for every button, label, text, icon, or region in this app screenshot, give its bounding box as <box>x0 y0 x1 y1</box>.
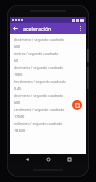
button[interactable]: decímetro / segundo cuadrado <box>14 64 82 78</box>
staticText: 0.45 <box>14 86 22 91</box>
staticText: 60 <box>14 58 19 63</box>
button[interactable]: Atrás <box>10 23 21 34</box>
staticText: 600 <box>14 100 21 105</box>
button[interactable]: Inicio <box>44 155 52 163</box>
staticText: hectómetro / segundo cuadrado <box>14 79 66 84</box>
button[interactable]: metros / segundo cuadrado <box>14 50 82 64</box>
button[interactable]: decímetro / segundo cuadrado <box>14 92 82 106</box>
staticText: 1000 <box>14 72 23 77</box>
staticText: decámetro / segundo cuadrado <box>14 37 65 42</box>
button[interactable]: Más opciones <box>75 23 86 34</box>
staticText: aceleración <box>23 25 52 32</box>
staticText: centímetro / segundo cuadrado <box>14 107 65 112</box>
staticText: decímetro / segundo cuadrado <box>14 65 64 70</box>
button[interactable]: hectómetro / segundo cuadrado <box>14 78 82 92</box>
button[interactable]: Atrás <box>23 155 31 163</box>
staticText: milímetro / segundo cuadrado <box>14 121 63 126</box>
button[interactable]: milímetro / segundo cuadrado <box>14 120 82 134</box>
button[interactable]: Recientes <box>65 155 73 163</box>
button[interactable]: decámetro / segundo cuadrado <box>14 36 82 50</box>
staticText: decímetro / segundo cuadrado <box>14 93 64 98</box>
staticText: 600 <box>14 44 21 49</box>
staticText: 17000 <box>14 114 25 119</box>
staticText: 18.000 <box>14 128 26 133</box>
button[interactable]: Borrar <box>72 100 82 110</box>
button[interactable]: centímetro / segundo cuadrado <box>14 106 82 120</box>
staticText: metros / segundo cuadrado <box>14 51 59 56</box>
